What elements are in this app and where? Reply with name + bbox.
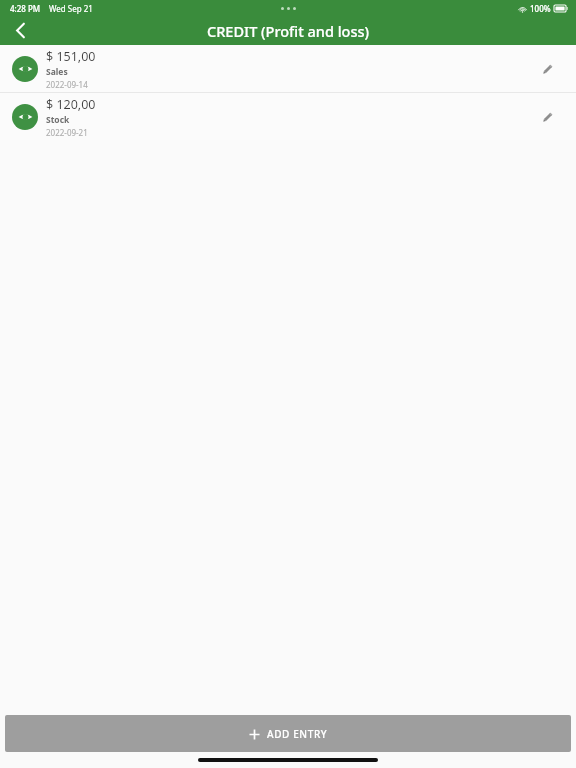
staticText: 2022-09-14 [46, 79, 88, 90]
button[interactable]: Edit [527, 49, 567, 89]
staticText: ADD ENTRY [267, 727, 328, 741]
staticText: 2022-09-21 [46, 127, 88, 138]
button[interactable]: View entry [12, 56, 38, 82]
button[interactable]: View entry [12, 104, 38, 130]
staticText: 100% [530, 3, 551, 14]
button[interactable]: Edit [527, 97, 567, 137]
staticText: 4:28 PM [10, 3, 41, 14]
staticText: Stock [46, 114, 70, 126]
staticText: $ 120,00 [46, 96, 96, 113]
staticText: CREDIT (Profit and loss) [0, 21, 576, 41]
button[interactable]: View entry [0, 45, 576, 92]
staticText: Sales [46, 66, 68, 78]
staticText: Wed Sep 21 [49, 3, 93, 14]
button[interactable]: ADD ENTRY [5, 715, 571, 752]
button[interactable]: View entry [0, 93, 576, 140]
staticText: $ 151,00 [46, 48, 96, 65]
button[interactable]: Back [0, 16, 40, 45]
